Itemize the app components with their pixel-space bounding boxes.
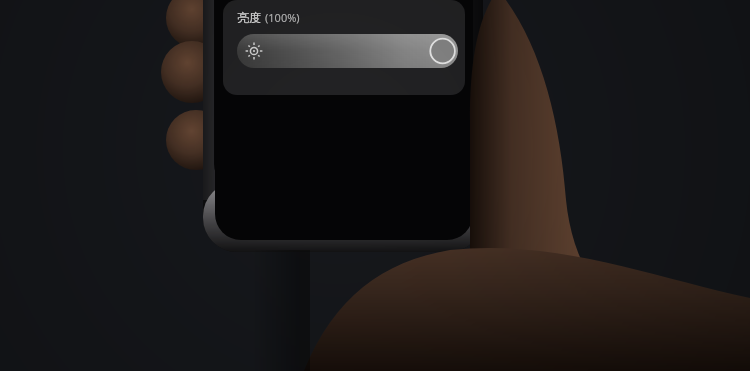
button[interactable]: Brightness slider, 100 percent: [237, 34, 458, 68]
staticText: (100%): [265, 10, 300, 25]
button[interactable]: 亮度: [223, 0, 465, 95]
staticText: 亮度: [237, 10, 261, 25]
